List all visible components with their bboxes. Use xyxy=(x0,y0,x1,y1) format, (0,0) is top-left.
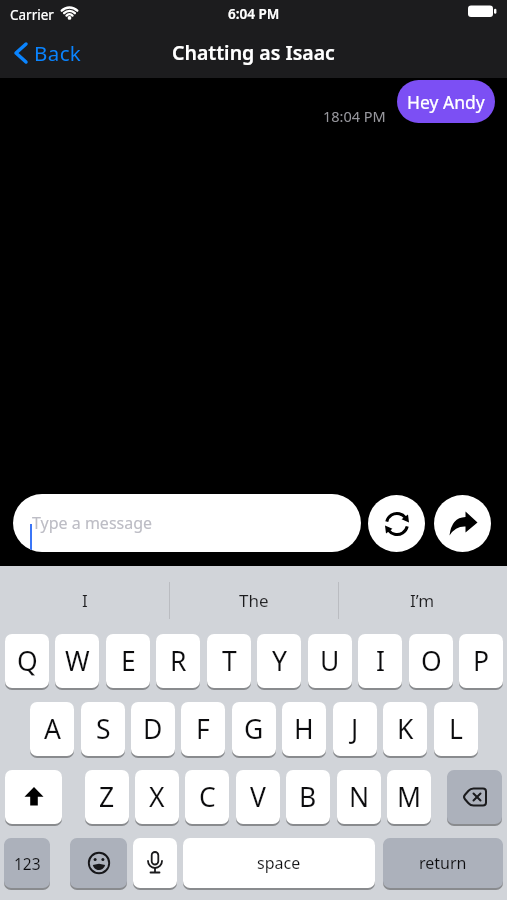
button[interactable]: B xyxy=(286,770,330,824)
staticText: Chatting as Isaac xyxy=(172,39,335,66)
button[interactable]: R xyxy=(156,634,200,688)
staticText: E xyxy=(121,643,136,679)
button[interactable]: K xyxy=(383,702,427,756)
button[interactable]: I’m xyxy=(338,566,507,634)
staticText: 18:04 PM xyxy=(323,106,386,126)
button[interactable]: Q xyxy=(5,634,49,688)
button[interactable]: Hey Andy xyxy=(397,80,495,123)
button[interactable]: T xyxy=(207,634,251,688)
staticText: K xyxy=(397,711,414,747)
button[interactable]: Type a message xyxy=(13,494,361,552)
staticText: L xyxy=(449,711,463,747)
staticText: U xyxy=(320,643,340,679)
staticText: B xyxy=(299,779,317,815)
button[interactable]: E xyxy=(106,634,150,688)
staticText: F xyxy=(196,711,210,747)
staticText: S xyxy=(96,711,111,747)
staticText: space xyxy=(257,852,301,874)
button[interactable]: J xyxy=(333,702,377,756)
staticText: Q xyxy=(17,643,38,679)
button[interactable] xyxy=(434,495,491,552)
staticText: V xyxy=(250,779,266,815)
staticText: Type a message xyxy=(32,512,153,534)
button[interactable]: G xyxy=(232,702,276,756)
staticText: O xyxy=(421,643,442,679)
button[interactable]: N xyxy=(337,770,381,824)
button[interactable]: I xyxy=(358,634,402,688)
button[interactable]: Z xyxy=(85,770,129,824)
button[interactable] xyxy=(368,495,425,552)
button[interactable]: Y xyxy=(257,634,301,688)
button[interactable]: X xyxy=(135,770,179,824)
button[interactable]: 123 xyxy=(4,838,50,888)
button[interactable]: H xyxy=(282,702,326,756)
staticText: Y xyxy=(272,643,287,679)
button[interactable] xyxy=(70,838,127,888)
button[interactable]: M xyxy=(387,770,431,824)
button[interactable] xyxy=(5,770,62,824)
button[interactable]: I xyxy=(0,566,169,634)
button[interactable]: Back xyxy=(10,36,100,70)
staticText: 123 xyxy=(14,853,41,874)
staticText: N xyxy=(349,779,370,815)
button[interactable]: O xyxy=(409,634,453,688)
staticText: R xyxy=(170,643,187,679)
button[interactable]: U xyxy=(308,634,352,688)
staticText: Z xyxy=(99,779,115,815)
button[interactable]: space xyxy=(183,838,375,888)
button[interactable]: return xyxy=(383,838,503,888)
staticText: W xyxy=(65,643,90,679)
button[interactable]: P xyxy=(459,634,503,688)
button[interactable]: L xyxy=(434,702,478,756)
staticText: J xyxy=(351,711,359,747)
button[interactable] xyxy=(133,838,177,888)
staticText: D xyxy=(143,711,163,747)
button[interactable]: W xyxy=(55,634,99,688)
staticText: Hey Andy xyxy=(407,90,485,114)
staticText: X xyxy=(149,779,165,815)
staticText: T xyxy=(222,643,237,679)
staticText: H xyxy=(294,711,314,747)
button[interactable]: D xyxy=(131,702,175,756)
staticText: return xyxy=(419,852,467,874)
staticText: P xyxy=(473,643,490,679)
button[interactable]: C xyxy=(185,770,229,824)
button[interactable]: The xyxy=(169,566,338,634)
staticText: A xyxy=(44,711,61,747)
button[interactable]: A xyxy=(30,702,74,756)
staticText: The xyxy=(239,589,269,612)
staticText: C xyxy=(199,779,216,815)
button[interactable]: S xyxy=(81,702,125,756)
staticText: 6:04 PM xyxy=(228,5,280,23)
button[interactable] xyxy=(447,770,502,824)
staticText: Back xyxy=(34,39,82,67)
staticText: I xyxy=(376,643,385,679)
button[interactable]: F xyxy=(181,702,225,756)
staticText: I xyxy=(82,589,88,612)
staticText: G xyxy=(244,711,264,747)
staticText: Carrier xyxy=(10,6,54,24)
button[interactable]: V xyxy=(236,770,280,824)
staticText: M xyxy=(397,779,422,815)
staticText: I’m xyxy=(410,589,435,612)
